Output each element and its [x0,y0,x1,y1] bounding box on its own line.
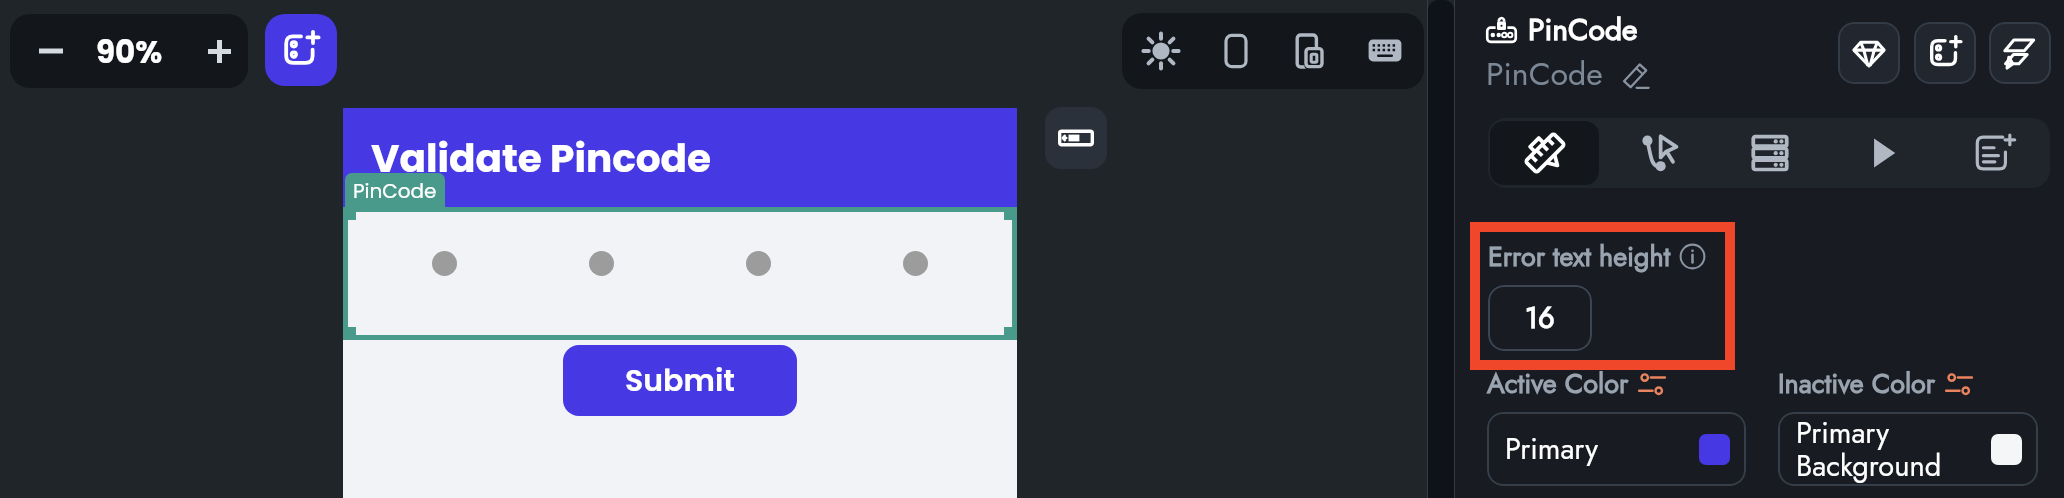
staticText: Validate Pincode [371,131,712,186]
button[interactable]: Notes [1940,121,2048,185]
button[interactable]: App bar settings [1045,107,1107,169]
staticText: Active Color [1487,364,1629,403]
button[interactable]: Theme mode [1125,15,1197,87]
button[interactable]: Add widget [265,14,337,86]
staticText: Primary Background [1796,412,1991,486]
button[interactable]: Add widget [1914,22,1976,84]
button[interactable]: Theme / premium [1838,22,1900,84]
button[interactable]: Submit [563,345,797,416]
staticText: 16 [1525,297,1555,339]
button[interactable]: Zoom out [20,14,82,88]
staticText: Inactive Color [1778,364,1936,403]
button[interactable]: Keyboard [1349,15,1421,87]
staticText: PinCode [353,177,437,205]
button[interactable]: Run [1828,121,1936,185]
button[interactable]: Backend query [1716,121,1824,185]
staticText: Error text height [1488,237,1671,276]
staticText: 90% [96,30,163,73]
staticText: PinCode [1528,8,1638,51]
button[interactable]: Rename widget [1617,55,1655,93]
button[interactable]: Primary Background [1778,412,2038,486]
button[interactable]: Primary [1487,412,1746,486]
staticText: Submit [625,360,735,402]
button[interactable]: Device [1200,15,1272,87]
button[interactable]: Actions [1603,121,1712,185]
button[interactable]: Design [1490,121,1599,185]
button[interactable]: Responsive preview [1274,15,1346,87]
button[interactable]: Zoom in [193,14,245,88]
button[interactable]: 16 [1488,285,1592,351]
staticText: Primary [1505,428,1699,470]
staticText: PinCode [1486,51,1603,97]
button[interactable]: Flutter code [1989,22,2051,84]
